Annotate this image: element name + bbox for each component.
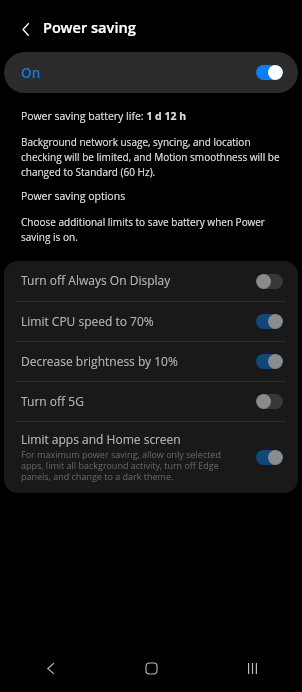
button[interactable]: Recent apps <box>235 651 269 685</box>
button[interactable]: Turn off 5G <box>4 382 298 421</box>
button[interactable]: Home <box>134 651 168 685</box>
button[interactable]: Limit apps and Home screen <box>4 422 298 493</box>
button[interactable]: Decrease brightness by 10% <box>4 342 298 381</box>
staticText: Background network usage, syncing, and l… <box>21 134 282 179</box>
staticText: On <box>21 65 41 81</box>
button[interactable]: Navigate up <box>13 17 37 41</box>
staticText: Power saving options <box>21 189 126 203</box>
staticText: Turn off Always On Display <box>21 274 171 288</box>
staticText: Turn off 5G <box>21 395 84 409</box>
staticText: Decrease brightness by 10% <box>21 355 178 369</box>
button[interactable]: On <box>4 52 298 93</box>
staticText: Limit CPU speed to 70% <box>21 315 154 329</box>
button[interactable]: Back <box>33 651 67 685</box>
staticText: For maximum power saving, allow only sel… <box>21 449 244 482</box>
button[interactable]: Limit CPU speed to 70% <box>4 302 298 341</box>
button[interactable]: Turn off Always On Display <box>4 261 298 301</box>
staticText: Choose additional limits to save battery… <box>21 214 282 244</box>
staticText: Limit apps and Home screen <box>21 433 181 447</box>
staticText: Power saving <box>43 20 136 37</box>
staticText: Power saving battery life: 1 d 12 h <box>21 109 187 123</box>
